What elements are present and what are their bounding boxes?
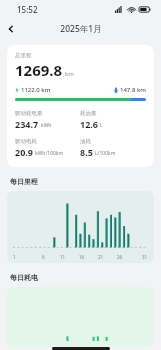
staticText: 16 — [79, 254, 85, 260]
staticText: 234.7 — [15, 118, 39, 130]
staticText: 驱动电耗 — [15, 138, 37, 145]
staticText: 8.5 — [80, 146, 93, 158]
staticText: 26 — [117, 254, 123, 260]
staticText: 12.6 — [80, 118, 98, 130]
button[interactable]: 总里程 — [7, 45, 154, 167]
button[interactable]: 1 — [7, 191, 154, 263]
staticText: 21 — [98, 254, 104, 260]
staticText: L/100km — [95, 150, 116, 157]
staticText: 20.9 — [15, 146, 33, 158]
staticText: 2025年1月 — [60, 23, 102, 35]
staticText: 每日耗电 — [10, 273, 38, 282]
button[interactable] — [7, 287, 154, 347]
staticText: 驱动耗电量 — [15, 110, 43, 117]
staticText: 1269.8 — [15, 60, 63, 80]
staticText: kWh — [41, 122, 52, 129]
staticText: 11 — [60, 254, 66, 260]
staticText: 油耗 — [80, 138, 91, 145]
staticText: 6 — [42, 254, 45, 260]
staticText: 每日里程 — [10, 177, 38, 186]
staticText: 总里程 — [15, 52, 32, 59]
staticText: 1122.0 km — [21, 86, 51, 94]
button[interactable]: Back — [0, 18, 22, 40]
staticText: 15:52 — [17, 4, 38, 15]
staticText: km — [65, 70, 74, 78]
staticText: 1 — [13, 254, 16, 260]
staticText: 31 — [142, 254, 148, 260]
staticText: L — [100, 122, 103, 129]
staticText: 147.8 km — [120, 86, 146, 94]
staticText: 耗油量 — [80, 110, 97, 117]
staticText: kWh/100km — [35, 150, 64, 157]
